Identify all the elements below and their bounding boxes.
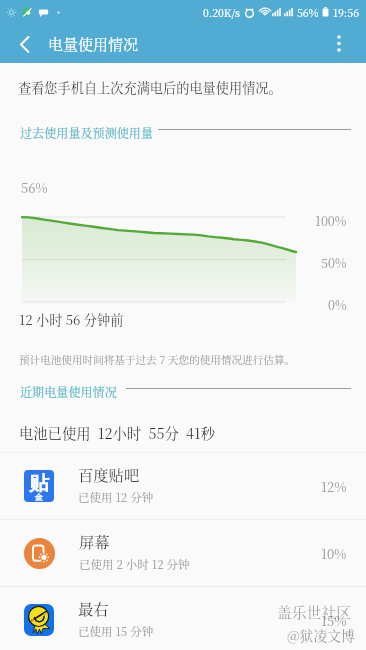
staticText: @狱凌文博 <box>287 625 355 645</box>
staticText: 过去使用量及预测使用量 <box>20 124 154 141</box>
button[interactable]: 屏幕 <box>0 520 366 586</box>
staticText: 10% <box>321 544 347 563</box>
staticText: 盖乐世社区 <box>277 601 351 622</box>
staticText: 已使用 2 小时 12 分钟 <box>79 556 190 573</box>
staticText: 屏幕 <box>79 530 110 552</box>
staticText: 56% <box>21 178 48 197</box>
button[interactable]: 贴 <box>0 453 366 519</box>
staticText: 电池已使用 12小时 55分 41秒 <box>19 423 215 444</box>
staticText: 百度贴吧 <box>78 463 140 485</box>
staticText: 15% <box>321 611 347 630</box>
staticText: 电量使用情况 <box>48 33 139 55</box>
staticText: 100% <box>315 212 347 230</box>
staticText: 预计电池使用时间将基于过去 7 天您的使用情况进行估算。 <box>19 352 296 367</box>
staticText: 查看您手机自上次充满电后的电量使用情况。 <box>18 78 282 97</box>
staticText: 最右 <box>78 597 109 619</box>
button[interactable]: More options <box>322 24 356 63</box>
button[interactable]: 最右 <box>0 587 366 650</box>
staticText: 贴 <box>29 471 49 496</box>
staticText: 12% <box>321 477 347 496</box>
staticText: 12 小时 56 分钟前 <box>19 310 124 329</box>
staticText: 50% <box>321 254 347 272</box>
staticText: 56% <box>297 5 319 20</box>
staticText: 0% <box>328 296 347 314</box>
staticText: 已使用 12 分钟 <box>78 489 154 506</box>
button[interactable]: Back <box>2 25 46 64</box>
staticText: 近期电量使用情况 <box>20 383 117 400</box>
staticText: 19:56 <box>333 5 359 20</box>
staticText: 已使用 15 分钟 <box>78 623 154 640</box>
staticText: 0.20K/s <box>203 5 240 20</box>
staticText: 金 <box>35 492 43 502</box>
